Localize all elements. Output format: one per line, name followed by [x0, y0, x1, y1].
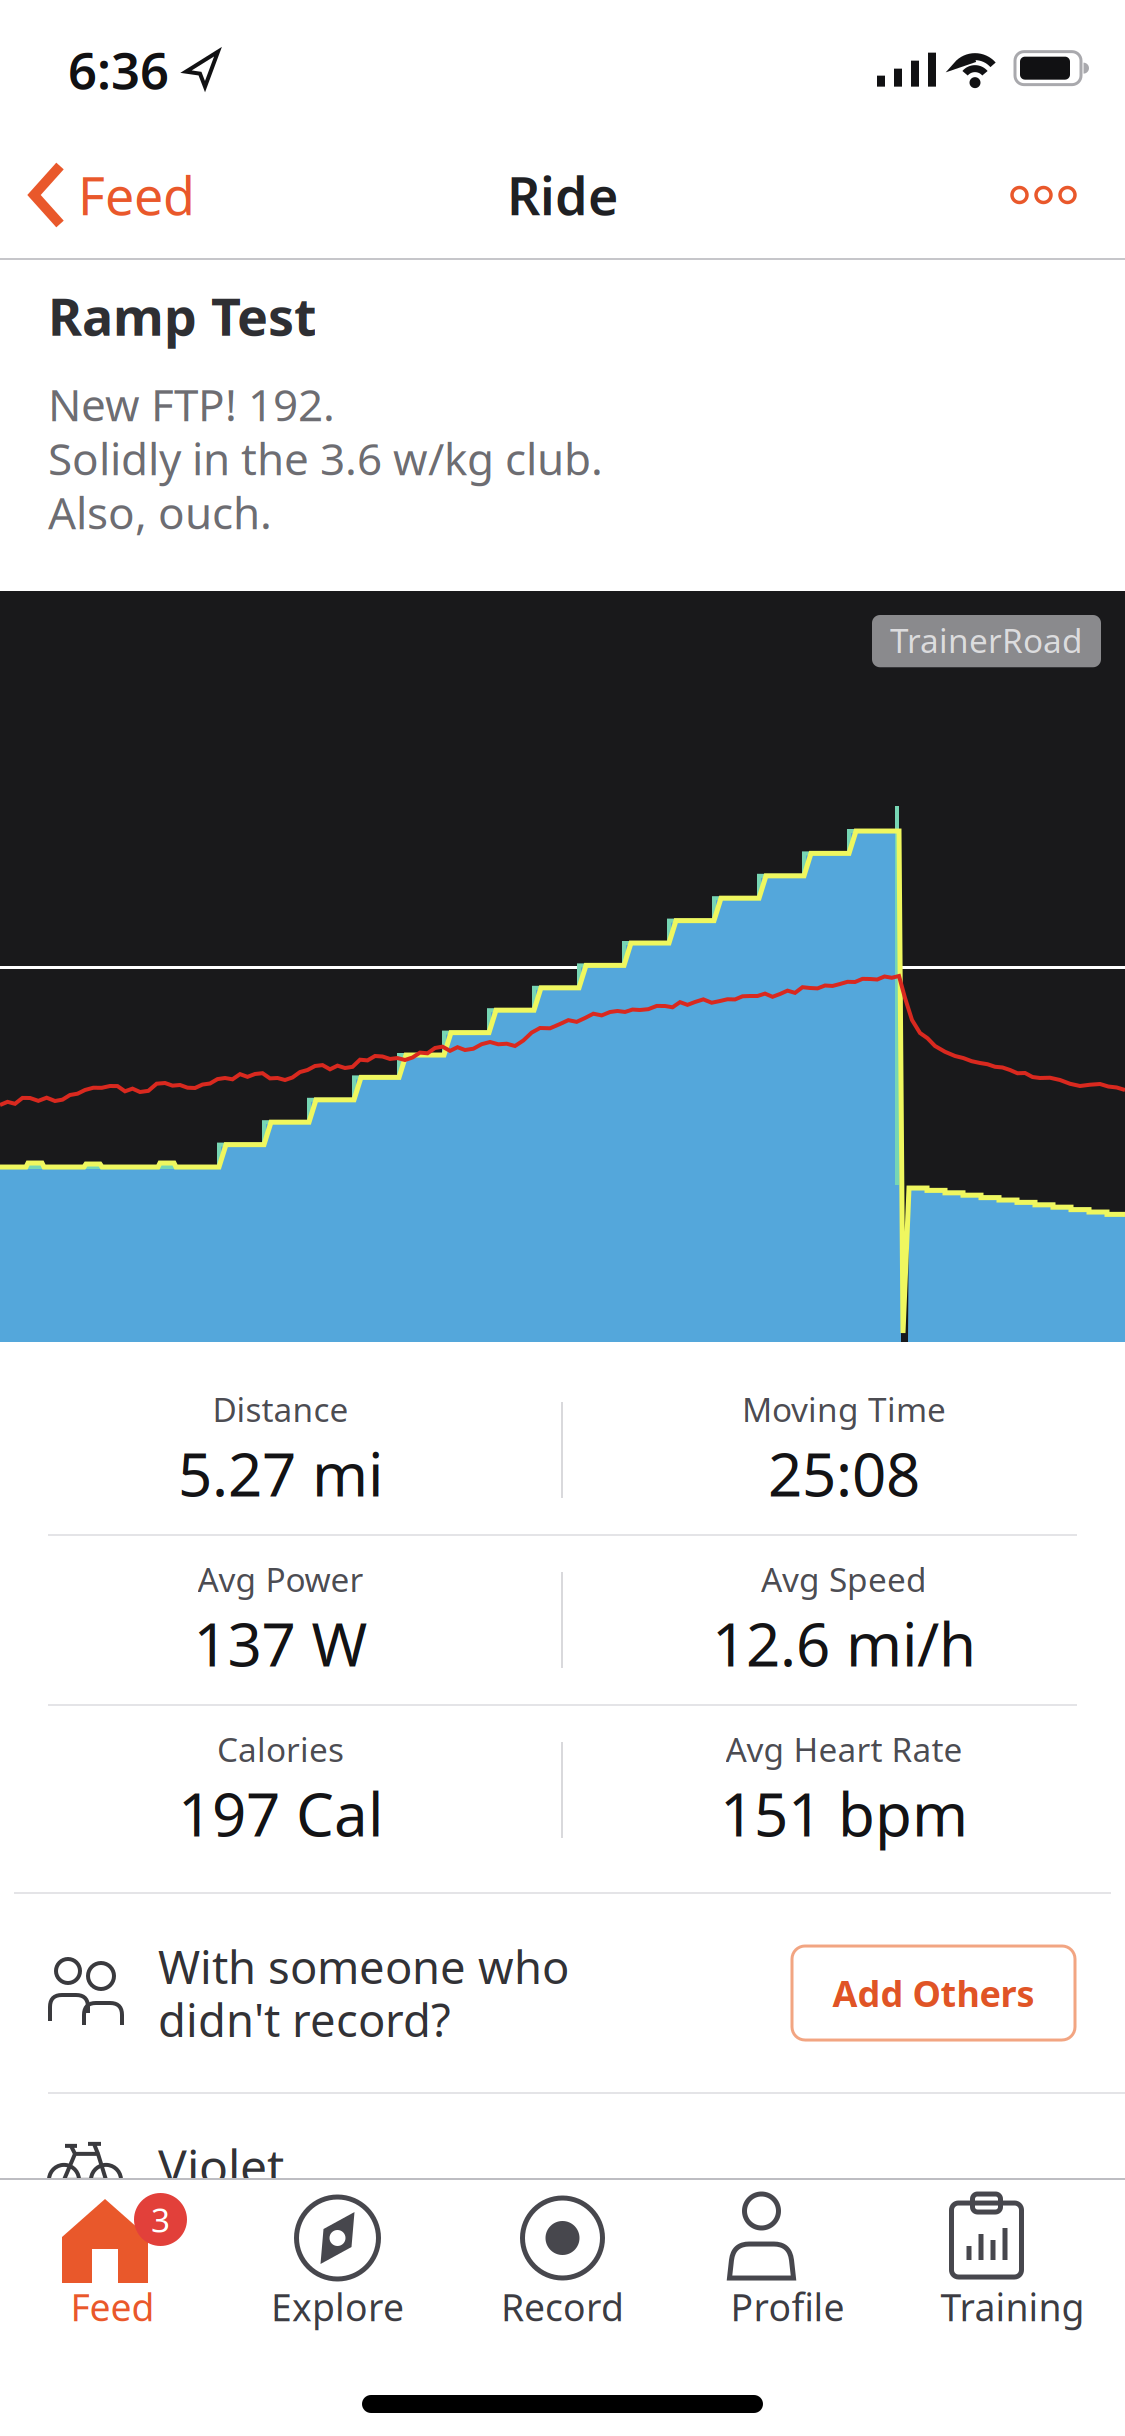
staticText: Profile	[730, 2282, 844, 2332]
staticText: Calories	[217, 1727, 344, 1771]
staticText: Solidly in the 3.6 w/kg club.	[48, 429, 603, 487]
staticText: Violet	[158, 2134, 284, 2198]
button[interactable]: 3	[0, 2180, 225, 2340]
button[interactable]: Feed	[0, 160, 195, 230]
staticText: 3	[151, 2197, 170, 2242]
staticText: Distance	[212, 1387, 348, 1431]
staticText: 137 W	[193, 1603, 367, 1683]
button[interactable]: Record	[450, 2180, 675, 2340]
staticText: Avg Heart Rate	[725, 1727, 962, 1771]
staticText: Training	[940, 2282, 1084, 2332]
button[interactable]: More options	[1012, 187, 1125, 202]
staticText: 5.27 mi	[178, 1433, 383, 1513]
staticText: Avg Speed	[761, 1557, 927, 1601]
staticText: Record	[501, 2282, 624, 2332]
staticText: Avg Power	[197, 1557, 363, 1601]
staticText: 25:08	[768, 1433, 920, 1513]
staticText: didn't record?	[158, 1989, 451, 2050]
button[interactable]: Profile	[675, 2180, 900, 2340]
button[interactable]: Violet	[0, 2094, 1125, 2198]
staticText: Also, ouch.	[48, 483, 272, 541]
staticText: 6:36	[68, 36, 169, 103]
staticText: 151 bpm	[720, 1773, 968, 1853]
staticText: Add Others	[832, 1969, 1034, 2017]
staticText: Explore	[271, 2282, 404, 2332]
staticText: With someone who	[158, 1936, 569, 1997]
staticText: Ramp Test	[48, 281, 317, 350]
button[interactable]: Add Others	[792, 1946, 1075, 2040]
staticText: 12.6 mi/h	[712, 1603, 976, 1683]
staticText: TrainerRoad	[890, 618, 1083, 662]
staticText: Feed	[78, 160, 195, 230]
staticText: Feed	[70, 2282, 154, 2332]
staticText: New FTP! 192.	[48, 375, 335, 433]
staticText: 197 Cal	[178, 1773, 383, 1853]
button[interactable]: Explore	[225, 2180, 450, 2340]
staticText: Moving Time	[742, 1387, 946, 1431]
staticText: Ride	[507, 160, 618, 230]
button[interactable]: Training	[900, 2180, 1125, 2340]
